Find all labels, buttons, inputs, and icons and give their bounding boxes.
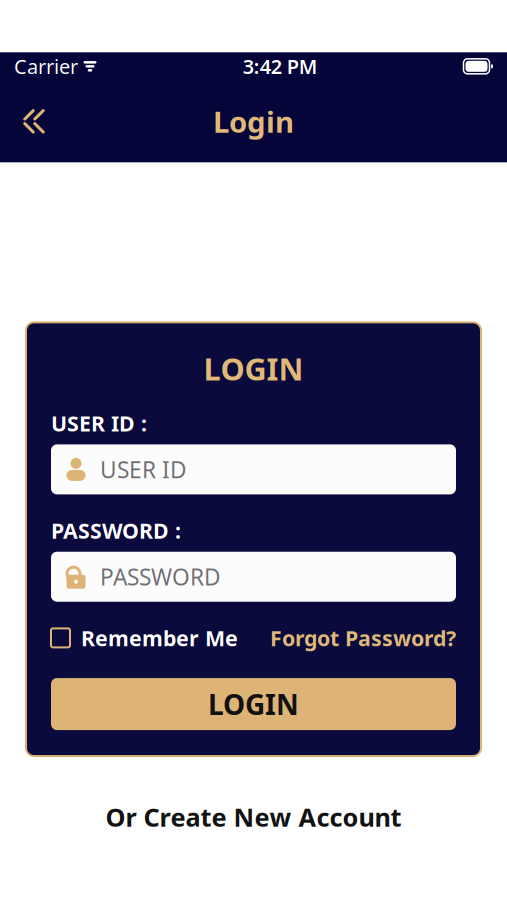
button[interactable]: Forgot Password? — [270, 620, 456, 656]
button[interactable]: USER ID — [51, 444, 456, 494]
staticText: Or Create New Account — [105, 800, 401, 834]
staticText: 3:42 PM — [243, 53, 318, 80]
button[interactable]: LOGIN — [51, 678, 456, 730]
button[interactable]: Remember Me — [51, 620, 238, 656]
staticText: Carrier — [14, 53, 78, 80]
button[interactable]: Back — [8, 95, 60, 147]
staticText: USER ID — [100, 454, 187, 484]
staticText: Login — [213, 102, 294, 141]
staticText: Remember Me — [81, 624, 238, 652]
button[interactable]: PASSWORD — [51, 552, 456, 602]
staticText: LOGIN — [203, 348, 303, 389]
staticText: PASSWORD — [100, 562, 221, 592]
staticText: LOGIN — [208, 685, 299, 723]
staticText: Forgot Password? — [270, 624, 456, 652]
button[interactable]: Or Create New Account — [93, 794, 413, 840]
staticText: USER ID : — [51, 409, 147, 437]
staticText: PASSWORD : — [51, 516, 181, 545]
